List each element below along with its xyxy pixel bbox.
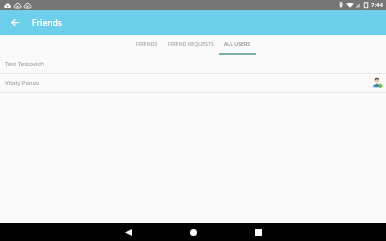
button[interactable]: Test Testovich	[0, 55, 386, 73]
staticText: Test Testovich	[5, 60, 44, 68]
button[interactable]: FRIENDS	[131, 35, 163, 55]
button[interactable]: FRIEND REQUESTS	[163, 35, 219, 55]
button[interactable]: Vitaly Panov	[0, 74, 386, 92]
button[interactable]: Back	[4, 12, 25, 33]
staticText: FRIEND REQUESTS	[168, 40, 214, 47]
staticText: FRIENDS	[136, 40, 158, 47]
staticText: 7:44	[371, 1, 383, 9]
button[interactable]: Back	[108, 223, 148, 241]
button[interactable]: ALL USERS	[219, 35, 256, 55]
staticText: Friends	[32, 17, 62, 29]
staticText: ALL USERS	[224, 40, 251, 47]
button[interactable]: Recents	[238, 223, 278, 241]
button[interactable]: Add friend	[370, 76, 384, 90]
button[interactable]: Home	[173, 223, 213, 241]
staticText: Vitaly Panov	[5, 79, 40, 87]
